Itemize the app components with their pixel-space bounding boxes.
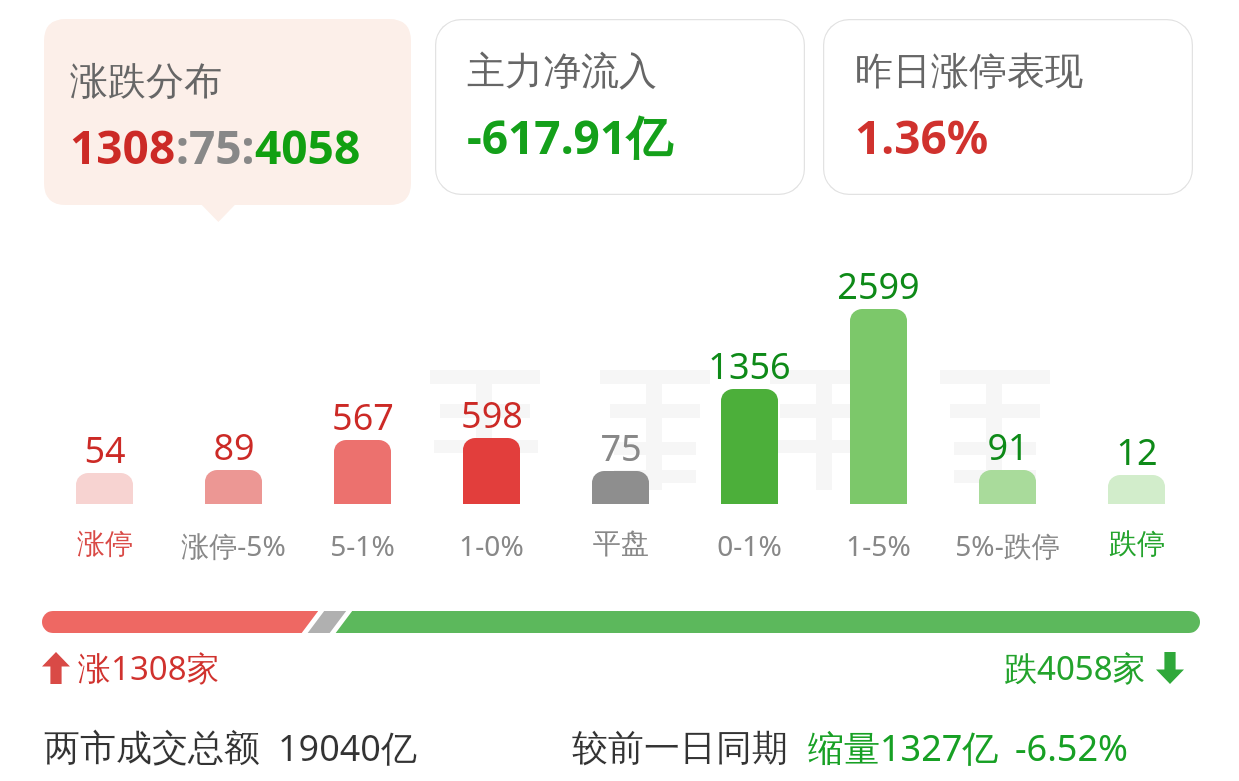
staticText: 2599 (837, 261, 920, 310)
staticText: 567 (332, 392, 394, 441)
staticText: 涨1308家 (78, 645, 220, 690)
staticText: 19040亿 (278, 723, 417, 772)
staticText: 跌停 (1109, 526, 1165, 561)
staticText: 较前一日同期 (572, 725, 788, 770)
staticText: 1-5% (846, 526, 911, 564)
button[interactable]: 主力净流入 (435, 19, 805, 195)
button[interactable] (42, 611, 1200, 633)
staticText: 1308 (70, 115, 176, 178)
staticText: 1.36% (855, 105, 989, 168)
staticText: 75 (600, 423, 642, 472)
staticText: 5%-跌停 (955, 526, 1060, 564)
staticText: 两市成交总额 (44, 725, 260, 770)
staticText: 12 (1116, 427, 1158, 476)
staticText: 昨日涨停表现 (855, 47, 1083, 95)
staticText: 89 (213, 422, 255, 471)
staticText: 平盘 (593, 526, 649, 561)
staticText: 91 (987, 422, 1029, 471)
staticText: 涨停 (77, 526, 133, 561)
staticText: -617.91亿 (467, 105, 673, 168)
staticText: 涨跌分布 (70, 57, 222, 105)
other: Up (42, 652, 70, 684)
staticText: 跌4058家 (1004, 645, 1146, 690)
staticText: 1-0% (459, 526, 524, 564)
staticText: 5-1% (330, 526, 395, 564)
staticText: 0-1% (717, 526, 782, 564)
staticText: 主力净流入 (467, 47, 657, 95)
staticText: 1356 (708, 341, 791, 390)
staticText: 4058 (255, 115, 361, 178)
button[interactable]: 昨日涨停表现 (823, 19, 1193, 195)
staticText: :75: (176, 115, 255, 178)
staticText: -6.52% (1015, 723, 1128, 772)
other: Down (1156, 652, 1184, 684)
staticText: 涨停-5% (181, 526, 286, 564)
button[interactable]: 涨跌分布 (44, 19, 411, 222)
staticText: 54 (84, 425, 126, 474)
staticText: 598 (461, 390, 523, 439)
staticText: 缩量1327亿 (808, 723, 999, 772)
